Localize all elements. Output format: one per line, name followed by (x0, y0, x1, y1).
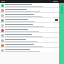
button[interactable] (0, 3, 59, 7)
button[interactable] (0, 48, 59, 52)
button[interactable] (0, 8, 59, 12)
button[interactable] (0, 38, 59, 42)
button[interactable] (0, 33, 59, 37)
button[interactable] (0, 23, 59, 27)
button[interactable] (0, 43, 59, 47)
button[interactable] (0, 28, 59, 32)
button[interactable] (0, 13, 59, 17)
button[interactable] (0, 18, 59, 22)
button[interactable]: Quick scroll (59, 3, 64, 64)
